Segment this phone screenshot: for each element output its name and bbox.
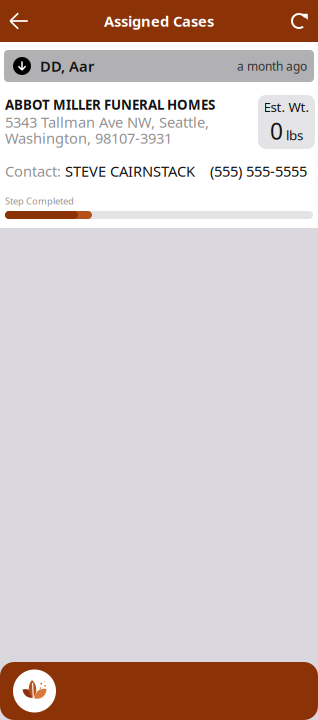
staticText: STEVE CAIRNSTACK bbox=[65, 161, 195, 181]
staticText: DD, Aar bbox=[40, 56, 94, 76]
button[interactable]: Back bbox=[0, 0, 38, 42]
button[interactable]: Home bbox=[0, 661, 56, 720]
button[interactable]: Refresh bbox=[281, 0, 318, 42]
staticText: Washington, 98107-3931 bbox=[5, 128, 172, 148]
staticText: ABBOT MILLER FUNERAL HOMES bbox=[5, 96, 215, 113]
staticText: Assigned Cases bbox=[104, 11, 214, 31]
staticText: 5343 Tallman Ave NW, Seattle, bbox=[5, 112, 209, 132]
staticText: (555) 555-5555 bbox=[210, 161, 307, 181]
staticText: a month ago bbox=[237, 58, 307, 74]
staticText: 0 bbox=[270, 116, 283, 146]
staticText: lbs bbox=[286, 126, 303, 144]
staticText: Est. Wt. bbox=[263, 98, 309, 116]
button[interactable]: DD, Aar bbox=[4, 50, 314, 82]
staticText: Contact: bbox=[5, 161, 65, 181]
staticText: Step Completed bbox=[5, 195, 74, 207]
